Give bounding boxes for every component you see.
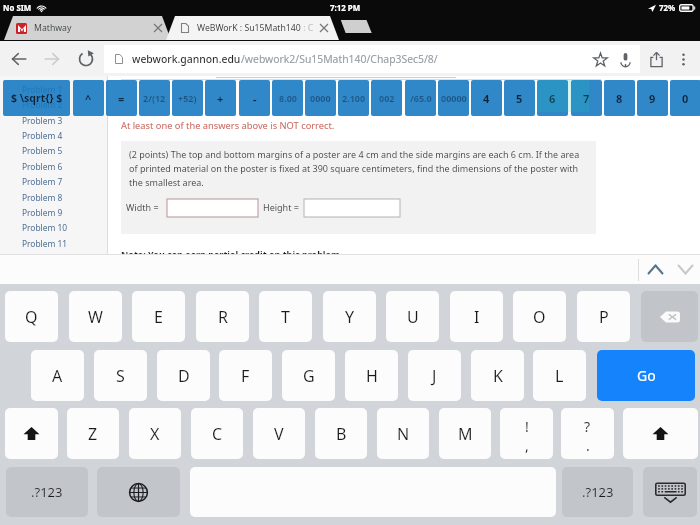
button[interactable]: Problem 1 [15,82,101,96]
button[interactable]: Close tab [316,20,332,36]
button[interactable]: O [513,291,566,342]
button[interactable]: 7 [571,80,602,116]
button[interactable]: 2/(12 [139,80,170,116]
staticText: Problem 1 [22,84,63,95]
button[interactable]: Q [5,291,58,342]
staticText: G [303,365,315,387]
button[interactable]: Problem 3 [15,113,101,127]
button[interactable]: V [253,408,305,459]
button[interactable]: - [239,80,270,116]
button[interactable]: C [191,408,243,459]
button[interactable]: Problem 10 [15,220,101,234]
button[interactable]: 8 [604,80,635,116]
button[interactable]: .?123 [562,467,633,517]
button[interactable]: ? [561,408,614,459]
button[interactable]: F [219,350,272,401]
button[interactable]: ! [500,408,553,459]
button[interactable]: More options [670,46,696,72]
button[interactable]: K [471,350,524,401]
button[interactable]: Hide keyboard [643,467,697,517]
button[interactable]: T [259,291,312,342]
button[interactable]: Problem 8 [15,190,101,204]
button[interactable]: Problem 5 [15,143,101,157]
button[interactable]: New tab [340,20,372,33]
button[interactable]: /65.0 [405,80,436,116]
button[interactable]: 8.00 [272,80,303,116]
staticText: Problem 2 [22,99,63,110]
button[interactable]: L [533,350,586,401]
button[interactable]: + [205,80,236,116]
button[interactable]: Reload [73,46,99,72]
staticText: 0000 [310,92,331,104]
button[interactable]: X [129,408,181,459]
button[interactable]: Problem 11 [15,236,101,250]
button[interactable]: 9 [637,80,668,116]
button[interactable]: 4 [471,80,502,116]
button[interactable]: 5 [504,80,535,116]
button[interactable]: G [282,350,335,401]
button[interactable]: Bookmark [587,46,613,72]
button[interactable]: W [69,291,122,342]
button[interactable]: Problem 2 [15,97,101,111]
staticText: No SIM [3,3,32,14]
button[interactable]: webwork.gannon.edu [104,45,640,73]
staticText: Problem 6 [22,161,63,172]
button[interactable] [304,199,400,217]
button[interactable]: D [157,350,210,401]
button[interactable]: Forward [39,46,65,72]
button[interactable]: Problem 6 [15,159,101,173]
staticText: +52) [178,92,197,104]
button[interactable]: 6 [537,80,568,116]
button[interactable]: Mathway [4,16,171,40]
button[interactable]: H [345,350,398,401]
button[interactable]: ^ [73,80,104,116]
button[interactable]: J [408,350,461,401]
button[interactable]: Y [323,291,376,342]
staticText: = [118,91,125,106]
button[interactable]: 00000 [438,80,469,116]
button[interactable]: Go [597,350,695,401]
button[interactable]: +52) [172,80,203,116]
button[interactable]: Share [643,46,669,72]
button[interactable]: Next field [673,257,697,281]
button[interactable]: Backspace [641,291,698,342]
button[interactable]: WeBWorK : Su15Math140 [166,16,339,40]
button[interactable]: 002 [371,80,402,116]
staticText: 7:12 PM [330,3,361,14]
button[interactable]: Problem 7 [15,174,101,188]
button[interactable]: Voice search [612,46,638,72]
button[interactable] [167,199,258,217]
button[interactable]: .?123 [6,467,88,517]
button[interactable]: = [106,80,137,116]
button[interactable]: 0000 [305,80,336,116]
button[interactable]: Shift [623,408,698,459]
button[interactable]: Switch language [97,467,180,517]
staticText: K [493,365,503,387]
staticText: D [178,365,190,387]
button[interactable]: I [450,291,503,342]
button[interactable]: A [31,350,84,401]
button[interactable]: 0 [670,80,700,116]
staticText: Problem 5 [22,145,63,156]
button[interactable]: Previous field [643,257,667,281]
staticText: WeBWorK : Su15Math140 [197,22,301,34]
button[interactable]: Problem 9 [15,205,101,219]
button[interactable]: S [94,350,147,401]
button[interactable]: 2.100 [338,80,369,116]
button[interactable]: Z [67,408,119,459]
button[interactable]: Problem 4 [15,128,101,142]
button[interactable]: R [196,291,249,342]
button[interactable]: $ \sqrt{} $ [3,80,70,116]
button[interactable]: U [386,291,439,342]
button[interactable]: N [377,408,429,459]
staticText: Height = [263,201,299,213]
button[interactable]: E [132,291,185,342]
button[interactable]: Back [6,46,32,72]
button[interactable]: Shift [5,408,58,459]
staticText: C [212,423,223,445]
button[interactable]: B [315,408,367,459]
button[interactable]: M [439,408,491,459]
button[interactable]: P [577,291,630,342]
button[interactable]: Close tab [150,20,166,36]
